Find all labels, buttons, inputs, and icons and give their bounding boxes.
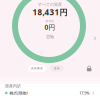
button[interactable]: 資産構成 [28,65,46,72]
staticText: 0% [46,33,53,40]
staticText: 資産構成 [31,67,43,70]
button[interactable]: 資産の詳細 [90,32,100,45]
button[interactable]: 金額を非表示 [84,65,94,71]
staticText: 株式(現物) [10,90,28,96]
staticText: 資産内訳 [5,83,21,88]
staticText: 推移 [54,67,60,70]
staticText: 17.9% [79,90,89,96]
staticText: すべての資産 [38,2,62,7]
button[interactable]: 推移 [50,65,64,72]
button[interactable]: 株式(現物) [0,89,100,96]
staticText: 0円 [44,23,55,32]
staticText: 前日比 [45,19,54,23]
staticText: 18,431円 [32,7,67,17]
